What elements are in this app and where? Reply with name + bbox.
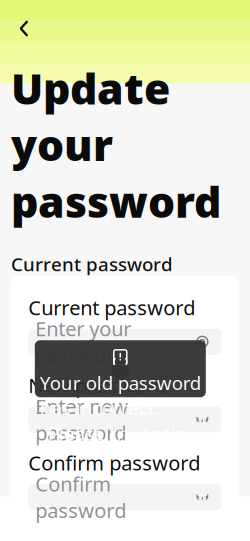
staticText: Your old password has incorrect. <box>40 370 201 420</box>
staticText: Confirm password <box>35 470 126 523</box>
staticText: Please try again. <box>48 421 193 446</box>
staticText: Update your password <box>11 59 221 229</box>
staticText: Enter your password <box>35 315 131 368</box>
staticText: New password <box>28 372 166 398</box>
staticText: Enter new password <box>35 393 128 446</box>
button[interactable]: Show password <box>190 408 214 430</box>
staticText: Current password <box>28 294 195 321</box>
staticText: Current password <box>11 251 173 276</box>
button[interactable]: Back <box>7 11 41 45</box>
staticText: Confirm password <box>28 449 200 476</box>
button[interactable]: Show password <box>190 486 214 508</box>
button[interactable]: Hide password <box>190 331 214 353</box>
